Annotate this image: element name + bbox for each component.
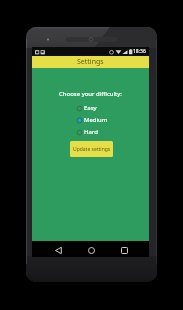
button[interactable]: Hard <box>76 127 110 137</box>
staticText: Easy <box>84 104 97 112</box>
button[interactable]: Medium <box>76 115 110 125</box>
button[interactable]: Home <box>83 242 99 258</box>
staticText: Update settings <box>73 146 111 153</box>
staticText: Medium <box>84 116 108 124</box>
staticText: Settings <box>77 57 104 67</box>
staticText: Choose your difficulty: <box>59 90 122 98</box>
button[interactable]: Recent apps <box>116 242 132 258</box>
staticText: 18:36 <box>133 48 146 55</box>
button[interactable]: Update settings <box>70 141 113 157</box>
button[interactable]: Back <box>50 242 66 258</box>
staticText: Hard <box>84 128 98 136</box>
button[interactable]: Settings <box>32 56 149 68</box>
button[interactable]: Easy <box>76 103 110 113</box>
